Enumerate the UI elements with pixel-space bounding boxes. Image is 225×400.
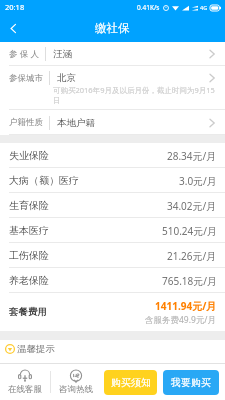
staticText: 本地户籍 (57, 117, 95, 129)
staticText: 1411.94元/月 (155, 299, 217, 313)
staticText: 生育保险 (9, 199, 49, 212)
button[interactable]: 我要购买 (163, 370, 219, 395)
staticText: 咨询热线 (59, 384, 93, 395)
button[interactable]: 购买须知 (104, 370, 157, 395)
staticText: 缴社保 (95, 21, 130, 35)
button[interactable]: 参 保 人 (0, 42, 225, 66)
button[interactable]: 基本医疗 (0, 218, 225, 243)
staticText: 大病（额）医疗 (9, 174, 79, 187)
button[interactable]: 工伤保险 (0, 243, 225, 268)
button[interactable]: 参保城市 (0, 66, 225, 110)
button[interactable]: 养老保险 (0, 268, 225, 293)
staticText: 34.02元/月 (167, 199, 217, 213)
button[interactable]: 户籍性质 (0, 110, 225, 135)
staticText: 失业保险 (9, 149, 49, 162)
staticText: 套餐费用 (9, 306, 47, 318)
staticText: 购买须知 (111, 376, 151, 389)
staticText: 汪涵 (53, 48, 72, 60)
button[interactable]: 大病（额）医疗 (0, 168, 225, 193)
staticText: 工伤保险 (9, 249, 49, 262)
staticText: 参 保 人 (9, 48, 39, 60)
staticText: 温馨提示 (17, 343, 55, 355)
staticText: 28.34元/月 (167, 149, 217, 163)
staticText: 户籍性质 (9, 117, 43, 128)
staticText: 北京 (57, 72, 76, 84)
staticText: 含服务费49.9元/月 (145, 314, 217, 326)
staticText: 3.0元/月 (179, 174, 217, 188)
staticText: 20:18 (5, 2, 25, 12)
button[interactable]: 生育保险 (0, 193, 225, 218)
staticText: 765.18元/月 (162, 274, 217, 288)
button[interactable]: Back (0, 15, 26, 41)
staticText: 可购买2016年9月及以后月份，截止时间为9月15日 (53, 85, 219, 105)
staticText: 参保城市 (9, 73, 43, 84)
staticText: 基本医疗 (9, 224, 49, 237)
button[interactable]: 在线客服 (0, 364, 50, 400)
staticText: 我要购买 (171, 376, 211, 389)
button[interactable]: 失业保险 (0, 143, 225, 168)
staticText: 4G (200, 4, 208, 11)
button[interactable]: 咨询热线 (51, 364, 101, 400)
staticText: 510.24元/月 (162, 224, 217, 238)
staticText: 养老保险 (9, 274, 49, 287)
staticText: 0.41K/s (137, 3, 160, 12)
staticText: 21.26元/月 (167, 249, 217, 263)
staticText: 在线客服 (8, 384, 42, 395)
